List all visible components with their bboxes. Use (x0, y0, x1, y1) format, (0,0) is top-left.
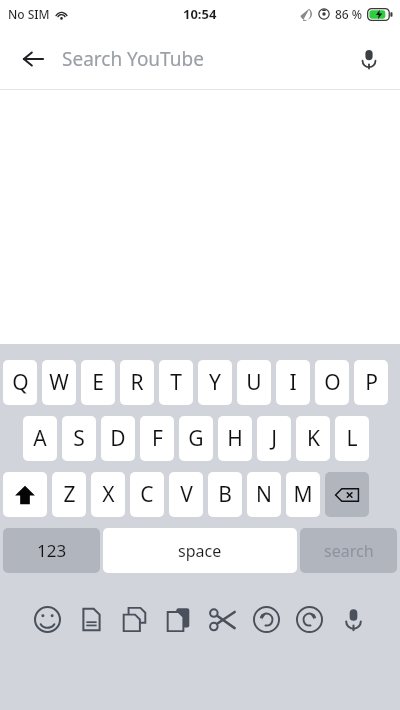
button[interactable]: 123 (3, 528, 100, 573)
button[interactable]: Document (74, 602, 108, 636)
staticText: P (365, 368, 378, 397)
staticText: A (33, 424, 47, 453)
button[interactable]: Back (9, 35, 57, 83)
staticText: U (246, 368, 262, 397)
button[interactable]: Search YouTube (62, 28, 348, 89)
staticText: O (324, 368, 341, 397)
staticText: W (49, 368, 69, 397)
staticText: F (152, 424, 163, 453)
staticText: 86 % (335, 6, 363, 22)
staticText: search (324, 540, 374, 562)
staticText: 123 (37, 539, 67, 562)
button[interactable]: X (91, 472, 125, 517)
staticText: C (140, 480, 154, 509)
button[interactable]: B (208, 472, 242, 517)
button[interactable]: R (120, 360, 154, 405)
button[interactable]: Z (52, 472, 86, 517)
button[interactable]: L (335, 416, 369, 461)
button[interactable]: space (103, 528, 297, 573)
button[interactable]: Voice input (336, 602, 370, 636)
staticText: D (110, 424, 126, 453)
button[interactable]: D (101, 416, 135, 461)
button[interactable]: U (237, 360, 271, 405)
button[interactable]: A (23, 416, 57, 461)
button[interactable]: Backspace (325, 472, 369, 517)
button[interactable]: S (62, 416, 96, 461)
staticText: space (178, 540, 222, 562)
button[interactable]: Emoji (30, 602, 64, 636)
staticText: K (307, 424, 320, 453)
button[interactable]: Q (3, 360, 37, 405)
staticText: Q (12, 368, 29, 397)
button[interactable]: Voice search (347, 37, 391, 81)
staticText: Z (63, 480, 76, 509)
button[interactable]: O (315, 360, 349, 405)
staticText: R (130, 368, 144, 397)
staticText: I (289, 368, 297, 397)
button[interactable]: I (276, 360, 310, 405)
staticText: 10:54 (183, 5, 217, 23)
staticText: Y (209, 368, 221, 397)
button[interactable]: Redo (292, 602, 326, 636)
staticText: T (170, 368, 182, 397)
button[interactable]: J (257, 416, 291, 461)
staticText: X (102, 480, 115, 509)
staticText: J (271, 424, 277, 453)
staticText: M (293, 480, 313, 509)
button[interactable]: V (169, 472, 203, 517)
staticText: S (73, 424, 85, 453)
button[interactable]: T (159, 360, 193, 405)
staticText: N (256, 480, 272, 509)
button[interactable]: H (218, 416, 252, 461)
button[interactable]: P (354, 360, 388, 405)
button[interactable]: F (140, 416, 174, 461)
button[interactable]: C (130, 472, 164, 517)
button[interactable]: N (247, 472, 281, 517)
button[interactable]: Copy (117, 602, 151, 636)
button[interactable]: Undo (249, 602, 283, 636)
staticText: Search YouTube (62, 46, 204, 72)
button[interactable]: Cut (205, 602, 239, 636)
button[interactable]: Shift (3, 472, 47, 517)
button[interactable]: Paste (161, 602, 195, 636)
staticText: L (346, 424, 358, 453)
button[interactable]: search (300, 528, 397, 573)
staticText: No SIM (8, 6, 50, 22)
button[interactable]: W (42, 360, 76, 405)
staticText: V (180, 480, 193, 509)
button[interactable]: K (296, 416, 330, 461)
button[interactable]: Y (198, 360, 232, 405)
staticText: H (227, 424, 243, 453)
button[interactable]: M (286, 472, 320, 517)
button[interactable]: E (81, 360, 115, 405)
staticText: G (188, 424, 204, 453)
button[interactable]: G (179, 416, 213, 461)
staticText: B (218, 480, 232, 509)
staticText: E (92, 368, 104, 397)
